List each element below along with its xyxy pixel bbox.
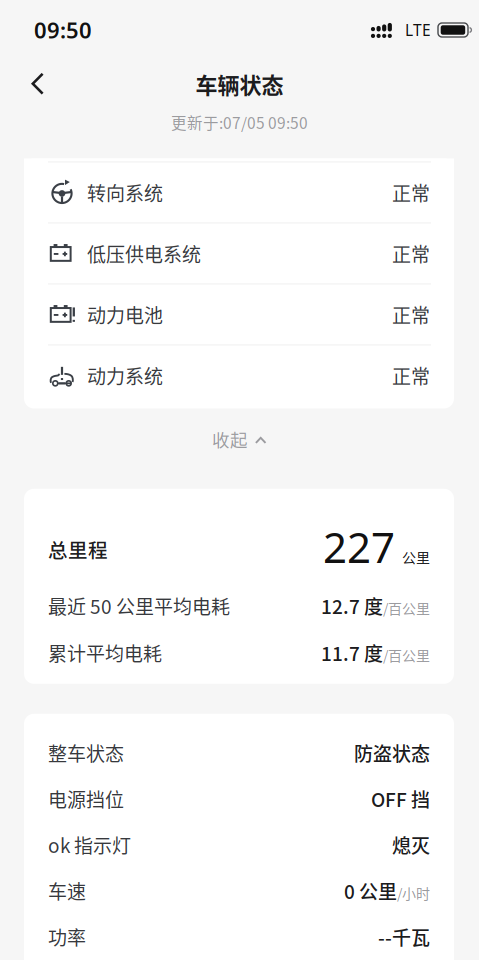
staticText: 车速 bbox=[48, 877, 86, 904]
staticText: 正常 bbox=[392, 362, 430, 389]
staticText: 更新于:07/05 09:50 bbox=[171, 111, 308, 133]
staticText: 最近 50 公里平均电耗 bbox=[48, 592, 230, 619]
staticText: 正常 bbox=[392, 179, 430, 206]
staticText: 收起 bbox=[212, 426, 248, 452]
staticText: 电源挡位 bbox=[48, 785, 124, 812]
staticText: 总里程 bbox=[48, 535, 108, 563]
staticText: --千瓦 bbox=[378, 923, 430, 950]
staticText: 熄灭 bbox=[392, 831, 430, 858]
staticText: 防盗状态 bbox=[354, 739, 430, 766]
button[interactable]: Back bbox=[0, 60, 63, 108]
staticText: /百公里 bbox=[383, 645, 430, 665]
staticText: 功率 bbox=[48, 923, 86, 950]
staticText: 正常 bbox=[392, 301, 430, 328]
staticText: 动力电池 bbox=[87, 301, 163, 328]
staticText: 转向系统 bbox=[87, 179, 163, 206]
button[interactable]: 收起 bbox=[212, 426, 267, 452]
staticText: 227 bbox=[323, 518, 395, 575]
staticText: 正常 bbox=[392, 240, 430, 267]
staticText: 动力系统 bbox=[87, 362, 163, 389]
staticText: ok 指示灯 bbox=[48, 831, 131, 858]
staticText: OFF 挡 bbox=[371, 785, 430, 812]
staticText: 累计平均电耗 bbox=[48, 639, 162, 666]
staticText: LTE bbox=[405, 19, 431, 40]
staticText: 公里 bbox=[402, 547, 430, 567]
staticText: 12.7 度 bbox=[321, 592, 383, 619]
staticText: 车辆状态 bbox=[195, 68, 283, 100]
staticText: /小时 bbox=[397, 883, 430, 903]
staticText: 整车状态 bbox=[48, 739, 124, 766]
staticText: /百公里 bbox=[383, 598, 430, 618]
staticText: 0 公里 bbox=[344, 877, 397, 904]
staticText: 11.7 度 bbox=[321, 639, 383, 666]
staticText: 低压供电系统 bbox=[87, 240, 201, 267]
staticText: 09:50 bbox=[34, 15, 92, 45]
